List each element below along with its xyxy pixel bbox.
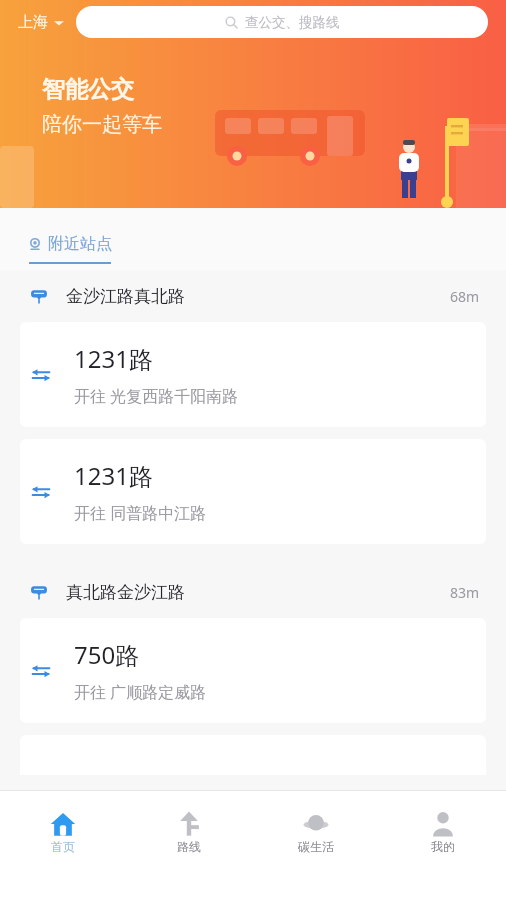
staticText: 开往 光复西路千阳南路 — [74, 385, 239, 407]
staticText: 路线 — [177, 839, 201, 854]
staticText: 开往 广顺路定威路 — [74, 681, 207, 703]
other: 我的 — [430, 811, 456, 837]
other: 碳生活 — [303, 811, 329, 837]
other: Direction — [30, 660, 52, 682]
other: Bus stop — [30, 583, 48, 601]
staticText: 陪你一起等车 — [42, 112, 162, 137]
staticText: 83m — [450, 583, 480, 602]
button[interactable]: Direction — [20, 322, 486, 427]
staticText: 750路 — [74, 638, 140, 671]
button[interactable]: Bus stop — [0, 566, 506, 618]
other: 首页 — [50, 811, 76, 837]
staticText: 碳生活 — [298, 839, 334, 854]
staticText: 查公交、搜路线 — [245, 14, 340, 31]
staticText: 附近站点 — [48, 234, 112, 254]
button[interactable]: Direction — [20, 439, 486, 544]
staticText: 1231路 — [74, 342, 153, 375]
staticText: 开往 同普路中江路 — [74, 502, 207, 524]
other: Bus stop — [30, 287, 48, 305]
button[interactable]: 我的 — [379, 791, 506, 854]
button[interactable]: 碳生活 — [252, 791, 379, 854]
button[interactable]: Bus stop — [0, 270, 506, 322]
staticText: 首页 — [51, 839, 75, 854]
staticText: 我的 — [431, 839, 455, 854]
staticText: 智能公交 — [42, 75, 134, 104]
staticText: 真北路金沙江路 — [66, 582, 185, 603]
staticText: 金沙江路真北路 — [66, 286, 185, 307]
staticText: 68m — [450, 287, 480, 306]
button[interactable]: 查公交、搜路线 — [76, 6, 488, 38]
staticText: 1231路 — [74, 459, 153, 492]
button[interactable]: 路线 — [126, 791, 252, 854]
other: Direction — [30, 364, 52, 386]
other: 路线 — [176, 811, 202, 837]
button[interactable]: 附近站点 — [28, 234, 112, 270]
button[interactable]: 上海 — [14, 7, 68, 38]
staticText: 上海 — [18, 13, 48, 32]
button[interactable]: Direction — [20, 618, 486, 723]
button[interactable]: 首页 — [0, 791, 126, 854]
other: Direction — [30, 481, 52, 503]
